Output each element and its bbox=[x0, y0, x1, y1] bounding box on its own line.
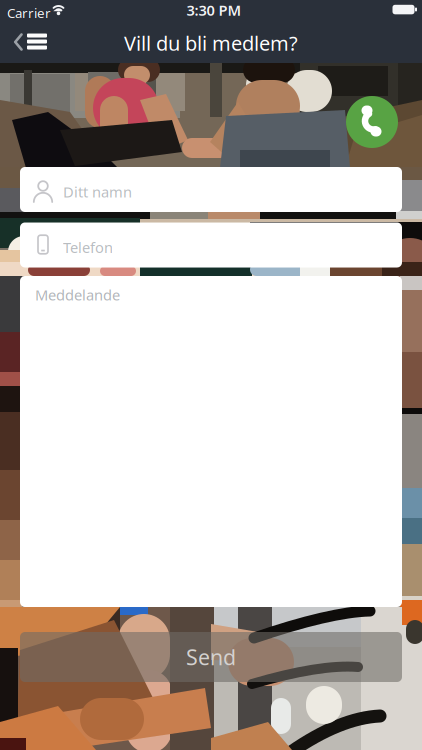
button[interactable]: Meddelande bbox=[20, 276, 402, 607]
button[interactable]: Call bbox=[346, 96, 398, 148]
staticText: Ditt namn bbox=[63, 182, 132, 201]
button[interactable]: Send bbox=[20, 632, 402, 682]
staticText: 3:30 PM bbox=[186, 0, 241, 20]
staticText: Send bbox=[186, 643, 236, 671]
button[interactable]: Telefon bbox=[20, 222, 402, 267]
staticText: Meddelande bbox=[35, 285, 120, 304]
button[interactable]: Back bbox=[14, 33, 32, 51]
staticText: Telefon bbox=[63, 237, 113, 257]
button[interactable]: Ditt namn bbox=[20, 167, 402, 212]
staticText: Carrier bbox=[7, 4, 51, 22]
button[interactable]: Menu bbox=[27, 33, 47, 49]
staticText: Vill du bli medlem? bbox=[124, 30, 298, 56]
